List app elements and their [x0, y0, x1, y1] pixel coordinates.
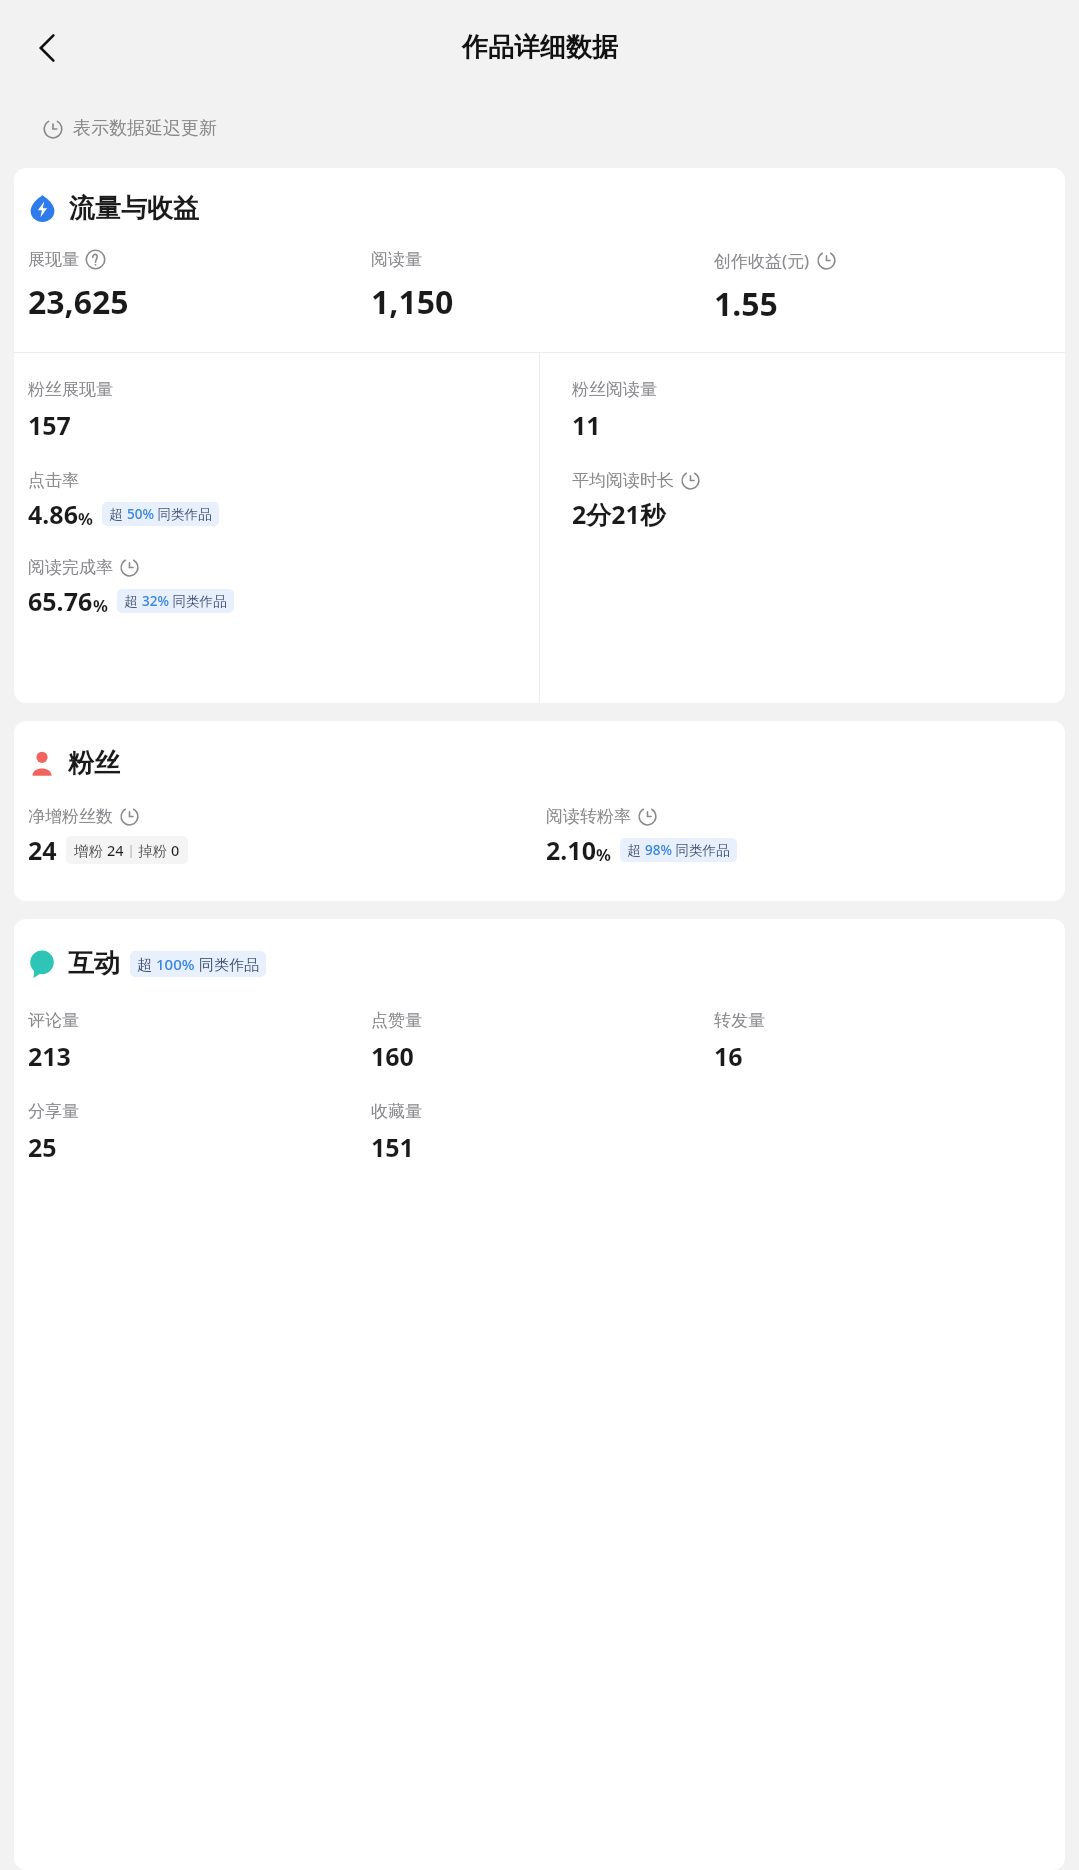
staticText: 1.55: [714, 282, 778, 326]
staticText: 24: [107, 840, 124, 860]
staticText: 阅读转粉率: [546, 806, 631, 827]
staticText: 粉丝阅读量: [572, 379, 657, 400]
staticText: 25: [28, 1130, 57, 1164]
staticText: 表示数据延迟更新: [73, 117, 217, 140]
staticText: 转发量: [714, 1010, 765, 1031]
staticText: 点击率: [28, 470, 79, 491]
staticText: 151: [371, 1130, 414, 1164]
staticText: 1,150: [371, 280, 454, 324]
staticText: 粉丝展现量: [28, 379, 113, 400]
staticText: %: [596, 843, 611, 865]
staticText: 平均阅读时长: [572, 470, 674, 491]
staticText: 超: [109, 505, 127, 523]
staticText: 65.76: [28, 584, 93, 618]
staticText: 32%: [142, 592, 169, 610]
staticText: 互动: [68, 947, 120, 980]
staticText: 157: [28, 408, 71, 442]
staticText: 50%: [127, 505, 154, 523]
staticText: 213: [28, 1039, 71, 1073]
staticText: 创作收益(元): [714, 249, 810, 272]
staticText: 超: [627, 841, 645, 859]
staticText: 净增粉丝数: [28, 806, 113, 827]
staticText: 同类作品: [154, 505, 212, 523]
staticText: 100%: [156, 954, 195, 974]
staticText: 2分21秒: [572, 497, 665, 531]
staticText: 阅读完成率: [28, 557, 113, 578]
staticText: 98%: [645, 841, 672, 859]
staticText: 0: [171, 840, 180, 860]
staticText: 粉丝: [68, 747, 120, 780]
staticText: 展现量: [28, 249, 79, 270]
staticText: 评论量: [28, 1010, 79, 1031]
staticText: 超: [124, 592, 142, 610]
staticText: 同类作品: [169, 592, 227, 610]
staticText: 收藏量: [371, 1101, 422, 1122]
staticText: 掉粉: [138, 840, 171, 860]
staticText: 24: [28, 833, 57, 867]
staticText: 2.10: [546, 833, 596, 867]
staticText: 阅读量: [371, 249, 422, 270]
button[interactable]: Back: [18, 18, 78, 78]
staticText: 增粉: [74, 840, 107, 860]
staticText: 点赞量: [371, 1010, 422, 1031]
staticText: 作品详细数据: [462, 31, 618, 64]
staticText: 4.86: [28, 497, 78, 531]
staticText: 11: [572, 408, 601, 442]
staticText: |: [124, 841, 138, 859]
staticText: 同类作品: [195, 954, 259, 974]
staticText: 流量与收益: [69, 192, 199, 225]
staticText: 分享量: [28, 1101, 79, 1122]
staticText: 16: [714, 1039, 743, 1073]
staticText: 超: [137, 954, 156, 974]
staticText: 23,625: [28, 280, 129, 324]
staticText: %: [78, 507, 93, 529]
staticText: 160: [371, 1039, 414, 1073]
staticText: %: [93, 594, 108, 616]
staticText: 同类作品: [672, 841, 730, 859]
